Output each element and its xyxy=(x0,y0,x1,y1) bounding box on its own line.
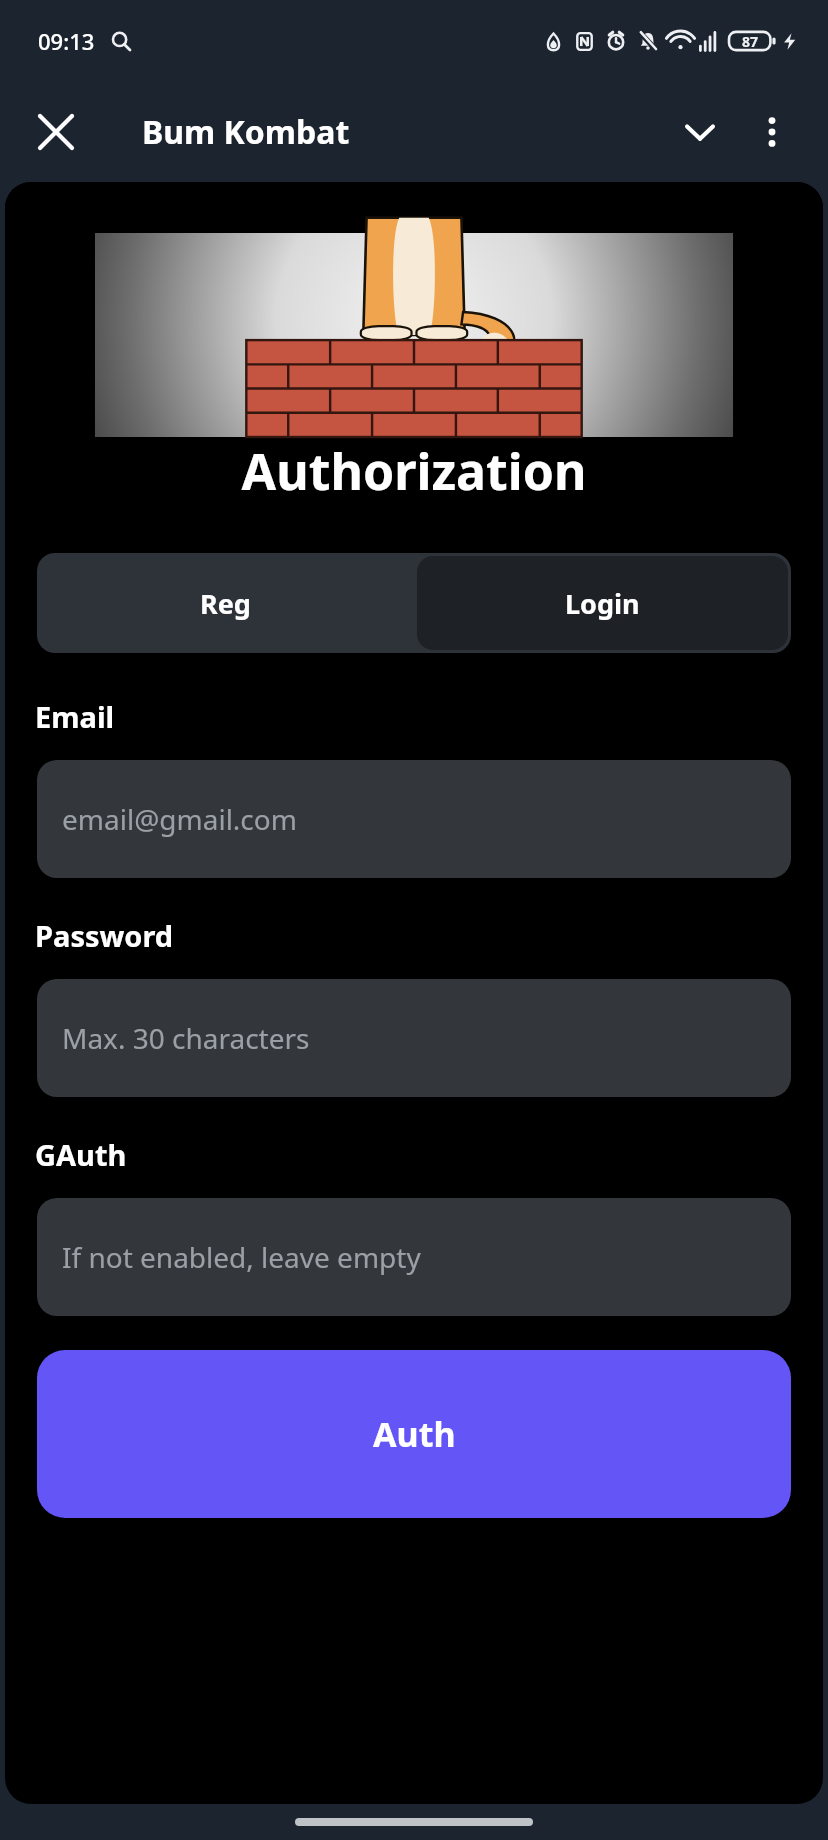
staticText: Login xyxy=(565,585,640,622)
button[interactable]: Close xyxy=(20,96,92,168)
button[interactable]: Auth xyxy=(37,1350,791,1518)
staticText: 09:13 xyxy=(38,26,95,56)
button[interactable]: Login xyxy=(417,556,788,650)
button[interactable]: If not enabled, leave empty xyxy=(37,1198,791,1316)
staticText: GAuth xyxy=(35,1135,127,1174)
staticText: Email xyxy=(35,697,115,736)
staticText: Reg xyxy=(200,585,251,622)
button[interactable]: More options xyxy=(736,96,808,168)
button[interactable]: Expand xyxy=(664,96,736,168)
staticText: Bum Kombat xyxy=(142,110,350,154)
staticText: 87 xyxy=(742,32,759,51)
staticText: If not enabled, leave empty xyxy=(62,1238,421,1276)
staticText: Authorization xyxy=(5,437,823,505)
button[interactable]: email@gmail.com xyxy=(37,760,791,878)
staticText: email@gmail.com xyxy=(62,800,297,838)
button[interactable]: Max. 30 characters xyxy=(37,979,791,1097)
button[interactable]: Reg xyxy=(37,553,414,653)
staticText: Auth xyxy=(373,1411,456,1457)
staticText: Password xyxy=(35,916,174,955)
staticText: Max. 30 characters xyxy=(62,1019,310,1057)
